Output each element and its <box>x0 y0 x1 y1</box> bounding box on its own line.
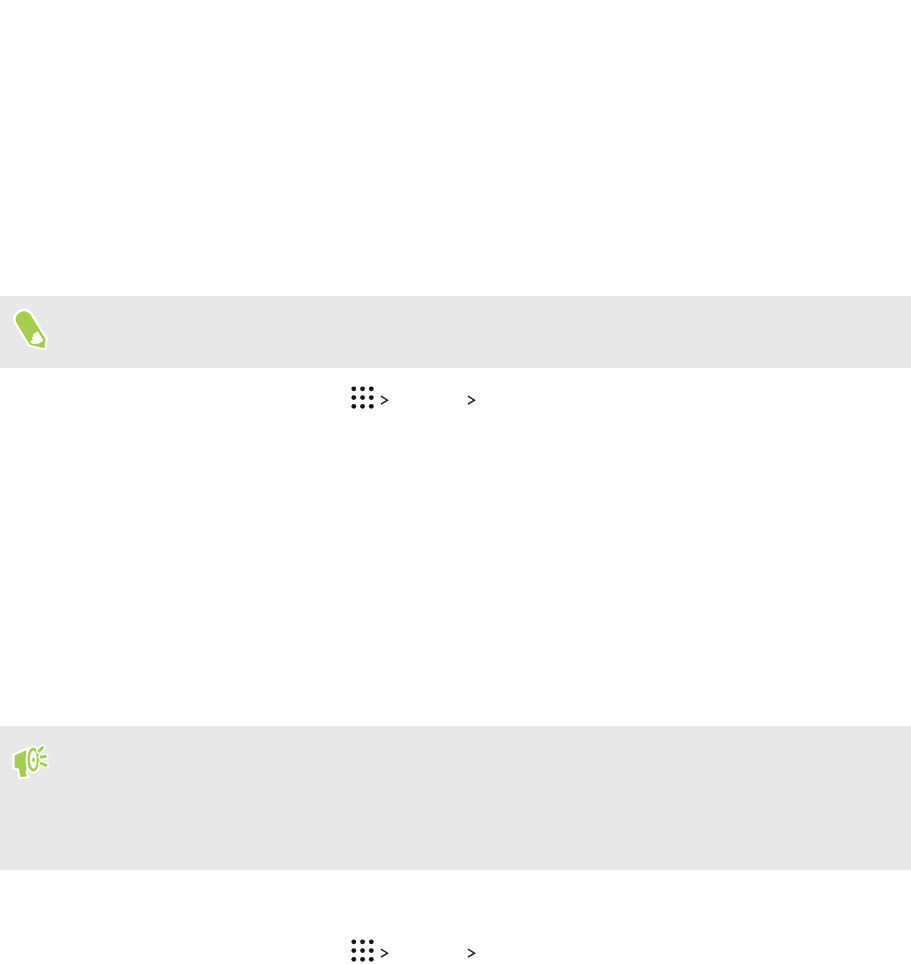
button[interactable]: All apps <box>351 386 374 409</box>
button[interactable]: Go to next item <box>380 392 389 404</box>
button[interactable]: Note <box>0 726 911 870</box>
button[interactable]: All apps <box>351 939 374 962</box>
button[interactable]: Go to next item <box>380 945 389 957</box>
button[interactable]: Go to next item <box>467 945 476 957</box>
button[interactable]: Go to next item <box>467 392 476 404</box>
button[interactable]: Tip <box>0 296 911 368</box>
